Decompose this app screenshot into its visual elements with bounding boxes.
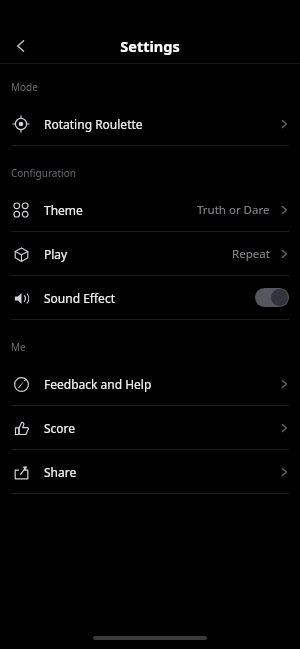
staticText: Truth or Dare bbox=[197, 202, 270, 218]
staticText: Settings bbox=[120, 36, 180, 56]
button[interactable]: Sound Effect toggle bbox=[255, 288, 289, 307]
staticText: Repeat bbox=[232, 246, 270, 262]
staticText: Configuration bbox=[11, 166, 76, 180]
staticText: Play bbox=[44, 246, 68, 262]
button[interactable]: Sound Effect bbox=[0, 276, 300, 319]
staticText: Sound Effect bbox=[44, 290, 115, 306]
button[interactable]: Feedback and Help bbox=[0, 362, 300, 405]
staticText: Mode bbox=[11, 80, 38, 94]
staticText: Score bbox=[44, 420, 76, 436]
staticText: Theme bbox=[44, 202, 83, 218]
staticText: Feedback and Help bbox=[44, 376, 152, 392]
button[interactable]: Back bbox=[6, 31, 36, 61]
button[interactable]: Theme bbox=[0, 188, 300, 231]
staticText: Share bbox=[44, 464, 77, 480]
button[interactable]: Play bbox=[0, 232, 300, 275]
staticText: Rotating Roulette bbox=[44, 116, 143, 132]
button[interactable]: Rotating Roulette bbox=[0, 102, 300, 145]
button[interactable]: Share bbox=[0, 450, 300, 493]
staticText: Me bbox=[11, 340, 26, 354]
button[interactable]: Score bbox=[0, 406, 300, 449]
